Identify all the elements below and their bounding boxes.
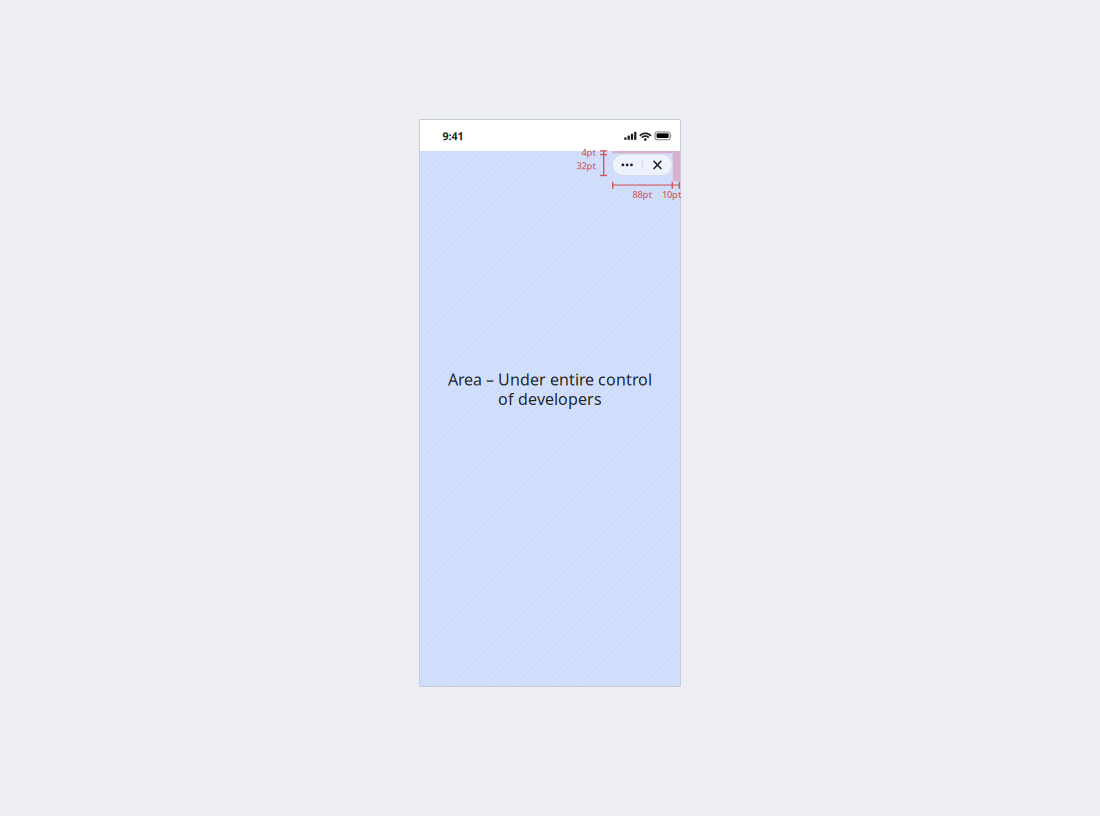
staticText: 10pt [662, 188, 682, 201]
staticText: 32pt [577, 159, 597, 172]
staticText: 88pt [632, 188, 652, 201]
staticText: of developers [498, 388, 602, 409]
staticText: Area – Under entire control [448, 369, 652, 390]
button[interactable]: Close [643, 154, 672, 176]
staticText: 4pt [582, 146, 597, 158]
button[interactable]: More options [612, 154, 642, 176]
staticText: 9:41 [442, 129, 463, 143]
